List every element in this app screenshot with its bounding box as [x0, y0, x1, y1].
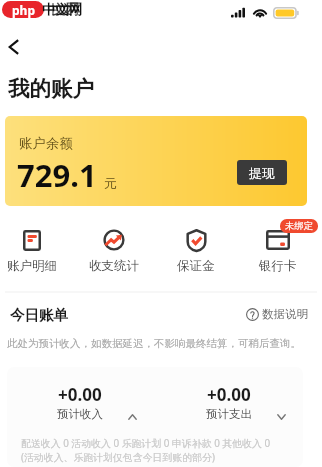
button[interactable]: 提现 [237, 160, 287, 185]
staticText: 数据说明 [262, 307, 308, 321]
staticText: 银行卡 [259, 258, 297, 274]
button[interactable]: +0.00 [20, 383, 140, 425]
staticText: (活动收入、乐跑计划仅包含今日到账的部分) [21, 450, 215, 464]
staticText: 提现 [249, 165, 275, 181]
staticText: 今日账单 [10, 306, 68, 324]
staticText: 729.1 [17, 154, 97, 196]
staticText: 元 [104, 175, 117, 191]
button[interactable]: 账户明细 [0, 228, 72, 278]
staticText: 账户明细 [7, 258, 57, 274]
button[interactable]: Back [2, 36, 24, 58]
staticText: +0.00 [207, 383, 251, 406]
staticText: 此处为预计收入，如数据延迟，不影响最终结算，可稍后查询。 [7, 337, 301, 350]
staticText: 中文 [47, 2, 72, 18]
staticText: +0.00 [58, 383, 102, 406]
button[interactable]: 数据说明 [246, 307, 308, 321]
button[interactable]: 银行卡 [238, 228, 318, 278]
staticText: php [12, 2, 35, 18]
staticText: 文网 [52, 1, 79, 18]
staticText: 收支统计 [89, 258, 139, 274]
staticText: 未绑定 [285, 220, 313, 232]
button[interactable]: +0.00 [169, 383, 289, 425]
button[interactable]: 保证金 [156, 228, 236, 278]
staticText: 中文网 [42, 1, 83, 18]
button[interactable]: 收支统计 [74, 228, 154, 278]
button[interactable]: 账户余额 [5, 116, 307, 206]
staticText: 配送收入 0 活动收入 0 乐跑计划 0 申诉补款 0 其他收入 0 [21, 436, 271, 450]
staticText: 账户余额 [19, 135, 73, 152]
staticText: 预计收入 [57, 407, 103, 421]
staticText: 预计支出 [206, 407, 252, 421]
staticText: 保证金 [177, 258, 215, 274]
staticText: 我的账户 [8, 75, 94, 102]
